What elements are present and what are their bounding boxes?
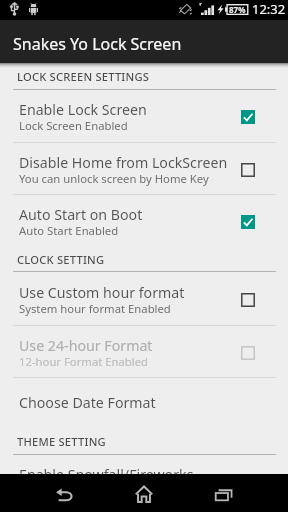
staticText: Enable Snowfall/Fireworks [19, 465, 194, 474]
staticText: THEME SETTING [17, 434, 106, 449]
button[interactable]: Recents [184, 474, 264, 512]
button[interactable]: Use Custom hour format [0, 272, 288, 325]
button[interactable]: Home [104, 474, 184, 512]
button[interactable]: Enable Lock Screen [0, 90, 288, 142]
button[interactable]: Back [24, 474, 104, 512]
staticText: 12-hour Format Enabled [19, 354, 149, 369]
staticText: Auto Start on Boot [19, 205, 143, 224]
staticText: 87% [229, 4, 246, 15]
staticText: CLOCK SETTING [17, 252, 105, 267]
staticText: Lock Screen Enabled [19, 118, 128, 133]
staticText: Snakes Yo Lock Screen [13, 33, 182, 55]
staticText: Use Custom hour format [19, 283, 185, 302]
staticText: Choose Date Format [19, 393, 156, 412]
button[interactable]: Use 24-hour Format [0, 326, 288, 377]
staticText: Auto Start Enabled [19, 223, 119, 238]
button[interactable]: Disable Home from LockScreen [0, 143, 288, 194]
staticText: 12:32 [252, 0, 286, 18]
staticText: Disable Home from LockScreen [19, 153, 228, 172]
button[interactable]: Auto Start on Boot [0, 195, 288, 247]
staticText: LOCK SCREEN SETTINGS [17, 69, 150, 84]
staticText: System hour format Enabled [19, 301, 171, 316]
button[interactable]: Enable Snowfall/Fireworks [0, 455, 288, 474]
staticText: Use 24-hour Format [19, 336, 153, 355]
staticText: Enable Lock Screen [19, 100, 147, 119]
button[interactable]: Choose Date Format [0, 378, 288, 429]
staticText: You can unlock screen by Home Key [19, 171, 209, 186]
